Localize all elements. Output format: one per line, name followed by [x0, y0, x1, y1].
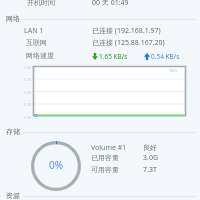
staticText: 0.54 KB/s — [151, 52, 180, 61]
staticText: KB/s — [164, 68, 177, 73]
button[interactable]: 开机时间 — [20, 0, 192, 9]
button[interactable]: 存储 — [4, 126, 196, 138]
staticText: 1.65 KB/s — [99, 52, 128, 61]
staticText: 开机时间 — [27, 0, 55, 7]
button[interactable]: Volume #1 — [88, 142, 188, 154]
staticText: 已连接 (192.168.1.97) — [92, 26, 161, 36]
staticText: LAN 1 — [24, 26, 44, 36]
staticText: 00 天 01:49 — [92, 0, 129, 8]
staticText: 3.0G — [143, 153, 158, 163]
staticText: 网络 — [6, 14, 20, 23]
staticText: 0.25 — [17, 102, 31, 107]
button[interactable]: 已用容量 — [88, 152, 188, 164]
button[interactable]: LAN 1 — [20, 25, 192, 37]
staticText: 存储 — [6, 127, 20, 136]
button[interactable]: 资源 — [4, 190, 196, 200]
staticText: 互联网 — [26, 38, 47, 47]
button[interactable]: 网络 — [4, 13, 196, 25]
staticText: 已用容量 — [91, 153, 119, 162]
staticText: 已连接 (125.88.167.20) — [92, 38, 165, 48]
staticText: 0% — [49, 158, 64, 172]
staticText: 可用容量 — [91, 165, 119, 174]
staticText: 1.00 — [17, 65, 31, 70]
button[interactable]: 网络速度 — [20, 50, 192, 62]
staticText: 7.3T — [143, 165, 157, 175]
button[interactable]: 互联网 — [20, 37, 192, 49]
staticText: 网络速度 — [26, 51, 54, 60]
button[interactable]: 可用容量 — [88, 164, 188, 176]
staticText: 0.50 — [17, 90, 31, 95]
button[interactable]: Volume 1 storage usage 0 percent — [31, 141, 81, 191]
staticText: 良好 — [143, 143, 157, 152]
staticText: 0.75 — [17, 77, 31, 82]
staticText: Volume #1 — [91, 143, 127, 153]
staticText: 0.00 — [17, 115, 31, 120]
staticText: 资源 — [6, 191, 20, 200]
